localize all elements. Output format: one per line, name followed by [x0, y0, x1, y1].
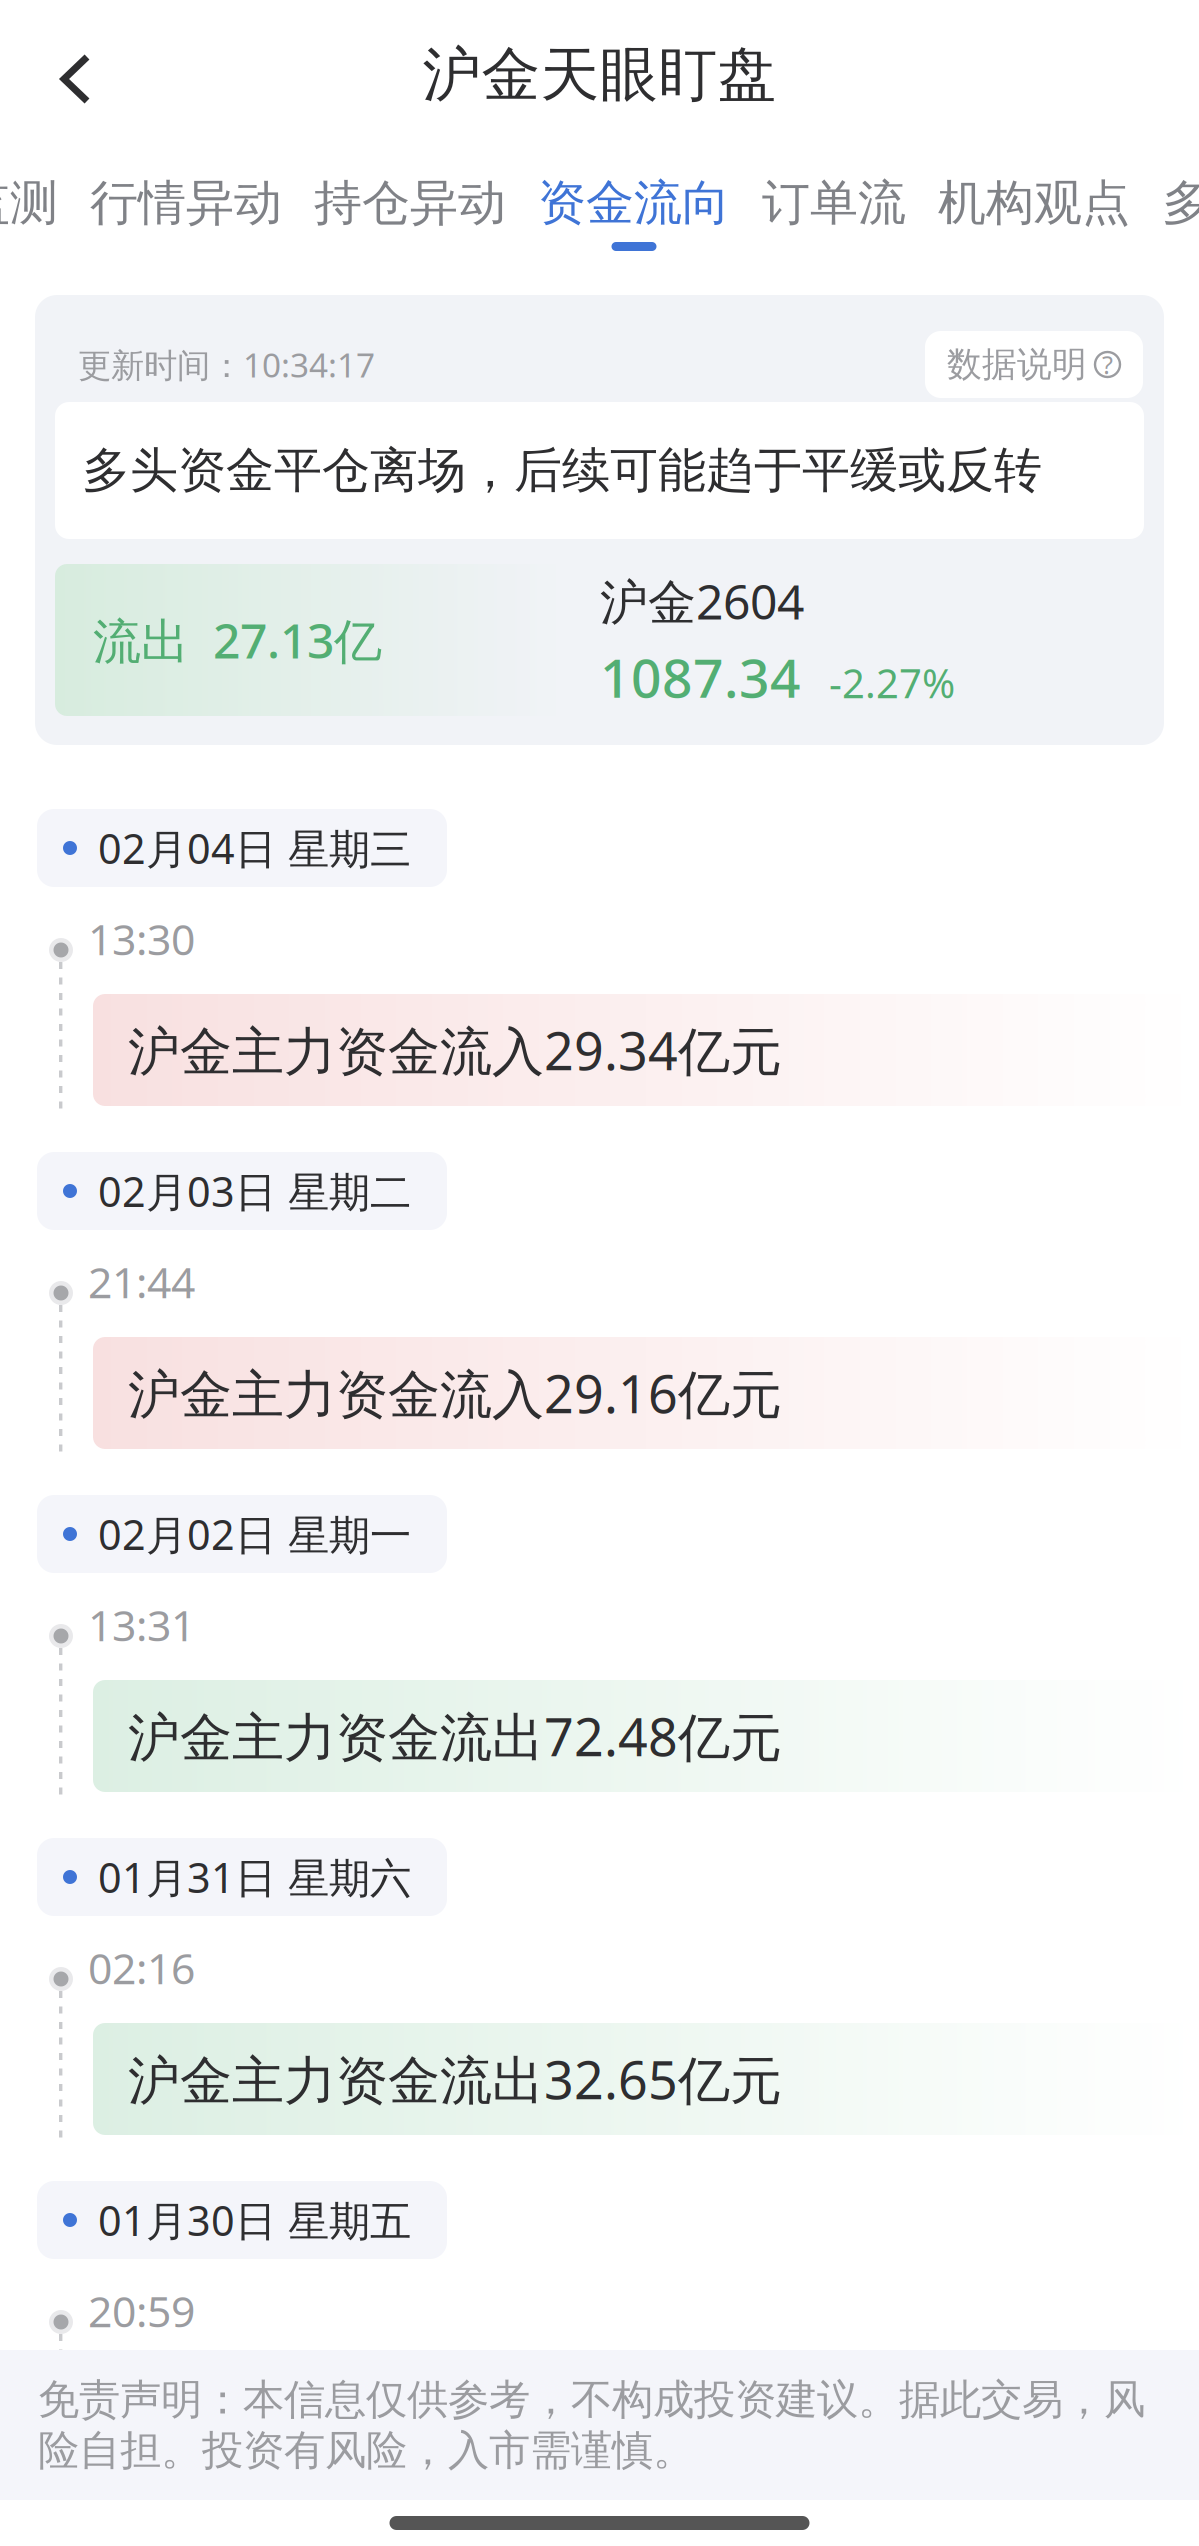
staticText: 13:31 [88, 1596, 195, 1653]
staticText: ? [1102, 348, 1113, 381]
staticText: 订单流 [762, 173, 906, 232]
staticText: 沪金主力资金流入29.34亿元 [128, 1015, 782, 1085]
staticText: 更新时间：10:34:17 [78, 342, 375, 387]
staticText: 01月30日 星期五 [98, 2193, 411, 2247]
button[interactable]: 机构观点 [938, 175, 1130, 251]
staticText: -2.27% [829, 656, 955, 709]
staticText: 多头资金平仓离场，后续可能趋于平缓或反转 [82, 441, 1042, 500]
staticText: 免责声明：本信息仅供参考，不构成投资建议。据此交易，风险自担。投资有风险，入市需… [38, 2374, 1145, 2476]
staticText: 1087.34 [600, 642, 801, 712]
staticText: 20:59 [88, 2282, 195, 2339]
staticText: 机构观点 [938, 173, 1130, 232]
staticText: 21:44 [88, 1253, 195, 1310]
staticText: 流出 27.13亿 [93, 608, 382, 672]
staticText: 沪金天眼盯盘 [422, 39, 776, 111]
button[interactable]: 数据说明 [925, 331, 1143, 398]
button[interactable]: 持仓异动 [314, 175, 506, 251]
staticText: 沪金2604 [600, 569, 804, 633]
button[interactable]: 监测 [0, 175, 58, 251]
staticText: 持仓异动 [314, 173, 506, 232]
staticText: 02:16 [88, 1939, 195, 1996]
staticText: 沪金主力资金流出32.65亿元 [128, 2044, 782, 2114]
staticText: 多空 [1162, 173, 1199, 232]
staticText: 数据说明 [947, 343, 1087, 386]
button[interactable]: 订单流 [762, 175, 906, 251]
staticText: 02月03日 星期二 [98, 1164, 411, 1218]
staticText: 监测 [0, 173, 58, 232]
staticText: 沪金主力资金流入29.16亿元 [128, 1358, 782, 1428]
button[interactable]: 行情异动 [90, 175, 282, 251]
staticText: 行情异动 [90, 173, 282, 232]
button[interactable]: 返回 [0, 9, 128, 141]
staticText: 沪金主力资金流出18.20亿元 [128, 2387, 782, 2457]
staticText: 01月31日 星期六 [98, 1850, 411, 1904]
staticText: 02月04日 星期三 [98, 821, 411, 875]
staticText: 沪金主力资金流出72.48亿元 [128, 1701, 782, 1771]
staticText: 02月02日 星期一 [98, 1507, 411, 1561]
staticText: 资金流向 [538, 173, 730, 232]
staticText: 13:30 [88, 910, 195, 967]
button[interactable]: 多空 [1162, 175, 1199, 251]
button[interactable]: 资金流向 [538, 175, 730, 251]
